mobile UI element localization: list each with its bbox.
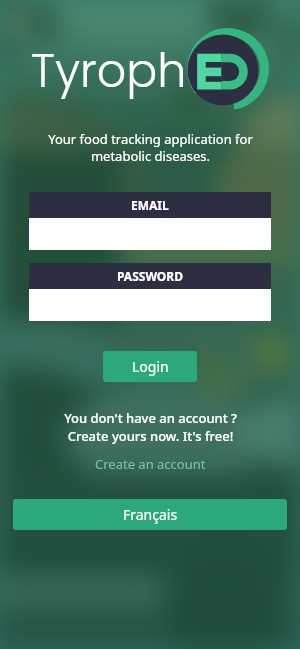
staticText: Create an account: [95, 455, 206, 473]
staticText: Tyroph: [31, 39, 187, 103]
button[interactable]: Français: [13, 499, 287, 530]
staticText: Your food tracking application for metab…: [48, 130, 253, 165]
staticText: You don't have an account ? Create yours…: [64, 409, 237, 445]
staticText: PASSWORD: [117, 268, 184, 284]
staticText: EMAIL: [131, 197, 169, 213]
button[interactable]: Create an account: [87, 453, 214, 475]
staticText: Français: [123, 505, 178, 524]
staticText: Login: [132, 357, 169, 376]
other: Tyroph ED logo: [187, 28, 269, 110]
button[interactable]: Login: [103, 351, 197, 382]
